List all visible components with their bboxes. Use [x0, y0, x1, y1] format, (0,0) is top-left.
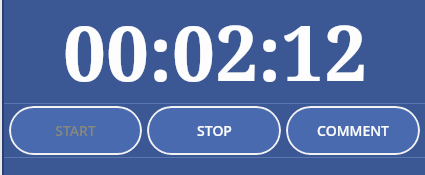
button[interactable]: COMMENT: [286, 106, 420, 155]
staticText: START: [55, 121, 96, 140]
staticText: STOP: [197, 121, 232, 140]
button[interactable]: START: [9, 106, 142, 155]
button[interactable]: STOP: [147, 106, 281, 155]
staticText: 00:02:12: [63, 0, 367, 99]
staticText: COMMENT: [317, 121, 389, 140]
